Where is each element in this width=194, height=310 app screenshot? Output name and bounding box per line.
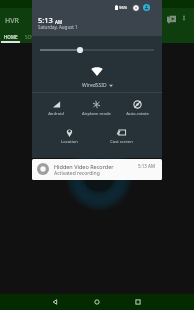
- staticText: HVR: [5, 16, 19, 26]
- button[interactable]: HOME: [0, 33, 21, 41]
- button[interactable]: [32, 44, 162, 56]
- button[interactable]: Back: [45, 294, 65, 310]
- button[interactable]: Airplane mode: [75, 100, 117, 117]
- button[interactable]: Settings: [132, 4, 139, 11]
- staticText: Android: [48, 111, 64, 117]
- staticText: Saturday, August 1: [38, 24, 78, 30]
- button[interactable]: Auto-rotate: [116, 100, 158, 117]
- button[interactable]: Recordings: [164, 12, 178, 26]
- staticText: 96%: [119, 5, 128, 11]
- staticText: Airplane mode: [82, 111, 111, 117]
- staticText: HOME: [4, 34, 18, 40]
- button[interactable]: More options: [178, 12, 190, 24]
- button[interactable]: Location: [48, 128, 90, 145]
- button[interactable]: Android: [35, 100, 77, 117]
- button[interactable]: Home: [87, 294, 107, 310]
- button[interactable]: Hidden Video Recorder: [32, 159, 162, 180]
- button[interactable]: SCHEDULE: [21, 33, 51, 41]
- staticText: 5:13: [38, 15, 53, 25]
- staticText: Cast screen: [110, 139, 133, 145]
- button[interactable]: WiredSSID: [32, 81, 162, 89]
- staticText: Hidden Video Recorder: [54, 163, 114, 170]
- button[interactable]: Cast screen: [100, 128, 142, 145]
- staticText: AM: [55, 19, 63, 25]
- button[interactable]: User profile: [143, 4, 150, 11]
- staticText: 5:13 AM: [138, 163, 156, 169]
- staticText: Activated recording: [54, 170, 100, 177]
- button[interactable]: Recent apps: [128, 294, 148, 310]
- staticText: Auto-rotate: [126, 111, 149, 117]
- staticText: WiredSSID: [82, 82, 107, 89]
- staticText: Location: [61, 139, 78, 145]
- staticText: SCHEDULE: [25, 34, 48, 40]
